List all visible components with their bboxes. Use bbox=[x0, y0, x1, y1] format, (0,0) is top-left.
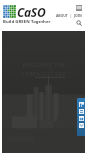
staticText: CaSO bbox=[17, 4, 46, 20]
button[interactable]: Share on social media bbox=[77, 98, 85, 136]
button[interactable]: Featured project bbox=[2, 31, 85, 153]
button[interactable]: LinkedIn bbox=[78, 115, 84, 121]
staticText: ABOUT bbox=[56, 13, 68, 18]
button[interactable]: Email bbox=[78, 122, 84, 128]
button[interactable]: CaSO home bbox=[3, 5, 46, 21]
staticText: | bbox=[70, 13, 72, 18]
button[interactable]: Menu bbox=[76, 5, 82, 11]
button[interactable]: Search bbox=[76, 20, 82, 26]
button[interactable]: Twitter bbox=[78, 108, 84, 114]
button[interactable]: ABOUT bbox=[56, 13, 82, 18]
staticText: Build GREEN Together bbox=[3, 19, 51, 25]
staticText: JOIN bbox=[74, 13, 82, 18]
button[interactable]: Facebook bbox=[78, 101, 84, 107]
